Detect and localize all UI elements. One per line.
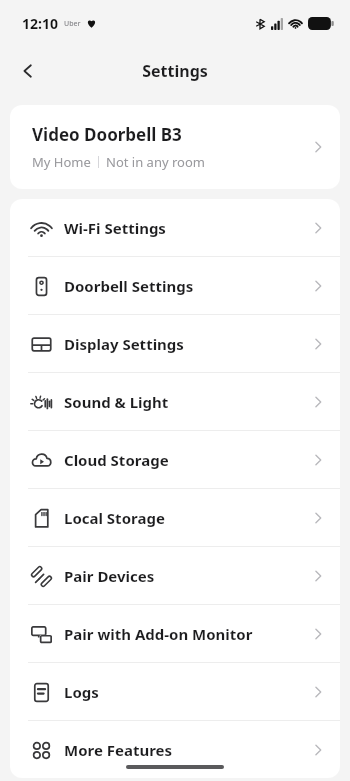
button[interactable]: Display Settings bbox=[10, 315, 340, 372]
button[interactable]: Video Doorbell B3 bbox=[10, 105, 340, 189]
button[interactable]: Back bbox=[8, 51, 48, 91]
button[interactable]: Pair with Add-on Monitor bbox=[10, 605, 340, 662]
staticText: Local Storage bbox=[64, 508, 165, 528]
staticText: Logs bbox=[64, 682, 99, 702]
staticText: Doorbell Settings bbox=[64, 276, 194, 296]
staticText: More Features bbox=[64, 740, 173, 760]
staticText: 12:10 bbox=[22, 14, 58, 33]
button[interactable]: Sound & Light bbox=[10, 373, 340, 430]
button[interactable]: Pair Devices bbox=[10, 547, 340, 604]
staticText: Cloud Storage bbox=[64, 450, 169, 470]
staticText: Sound & Light bbox=[64, 392, 169, 412]
staticText: Wi-Fi Settings bbox=[64, 218, 166, 238]
button[interactable]: Doorbell Settings bbox=[10, 257, 340, 314]
button[interactable]: Local Storage bbox=[10, 489, 340, 546]
staticText: Not in any room bbox=[106, 153, 205, 171]
button[interactable]: Wi-Fi Settings bbox=[10, 199, 340, 256]
button[interactable]: Cloud Storage bbox=[10, 431, 340, 488]
staticText: Pair with Add-on Monitor bbox=[64, 624, 253, 644]
staticText: Settings bbox=[142, 60, 208, 82]
staticText: Video Doorbell B3 bbox=[32, 123, 182, 146]
staticText: Uber bbox=[64, 19, 81, 29]
button[interactable]: More Features bbox=[10, 721, 340, 778]
staticText: My Home bbox=[32, 153, 91, 171]
button[interactable]: Logs bbox=[10, 663, 340, 720]
staticText: Display Settings bbox=[64, 334, 184, 354]
staticText: Pair Devices bbox=[64, 566, 155, 586]
